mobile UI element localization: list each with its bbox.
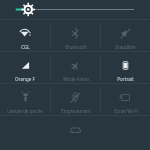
other: Écran Wi-Fi bbox=[118, 90, 133, 105]
button[interactable]: Inaudible bbox=[101, 20, 150, 51]
button[interactable]: Mode Avion bbox=[51, 52, 100, 83]
other: Mode Avion bbox=[68, 58, 83, 73]
staticText: Orange F bbox=[15, 76, 35, 82]
staticText: Emplacement bbox=[61, 108, 91, 114]
button[interactable]: Orange F bbox=[0, 52, 50, 83]
button[interactable]: CGL bbox=[0, 20, 50, 51]
other: Portrait bbox=[118, 58, 133, 73]
other: Inaudible bbox=[118, 26, 133, 41]
button[interactable]: Bluetooth bbox=[51, 20, 100, 51]
other: Orange F bbox=[18, 58, 33, 73]
staticText: Portrait bbox=[117, 76, 134, 82]
other: Lampe de poche bbox=[18, 90, 33, 105]
button[interactable]: Portrait bbox=[101, 52, 150, 83]
button[interactable]: Lampe de poche bbox=[0, 84, 50, 115]
staticText: Bluetooth bbox=[65, 44, 87, 50]
staticText: CGL bbox=[21, 44, 30, 50]
other: Bluetooth bbox=[68, 26, 83, 41]
staticText: Mode Avion bbox=[63, 76, 89, 82]
button[interactable]: Brightness bbox=[0, 0, 150, 19]
staticText: Écran Wi-Fi bbox=[114, 108, 138, 114]
staticText: Inaudible bbox=[115, 44, 136, 50]
button[interactable]: Mode voiture bbox=[50, 116, 100, 140]
other: Emplacement bbox=[68, 90, 83, 105]
other: CGL bbox=[18, 26, 33, 41]
button[interactable]: Emplacement bbox=[51, 84, 100, 115]
button[interactable]: Écran Wi-Fi bbox=[101, 84, 150, 115]
staticText: Lampe de poche bbox=[7, 108, 43, 114]
